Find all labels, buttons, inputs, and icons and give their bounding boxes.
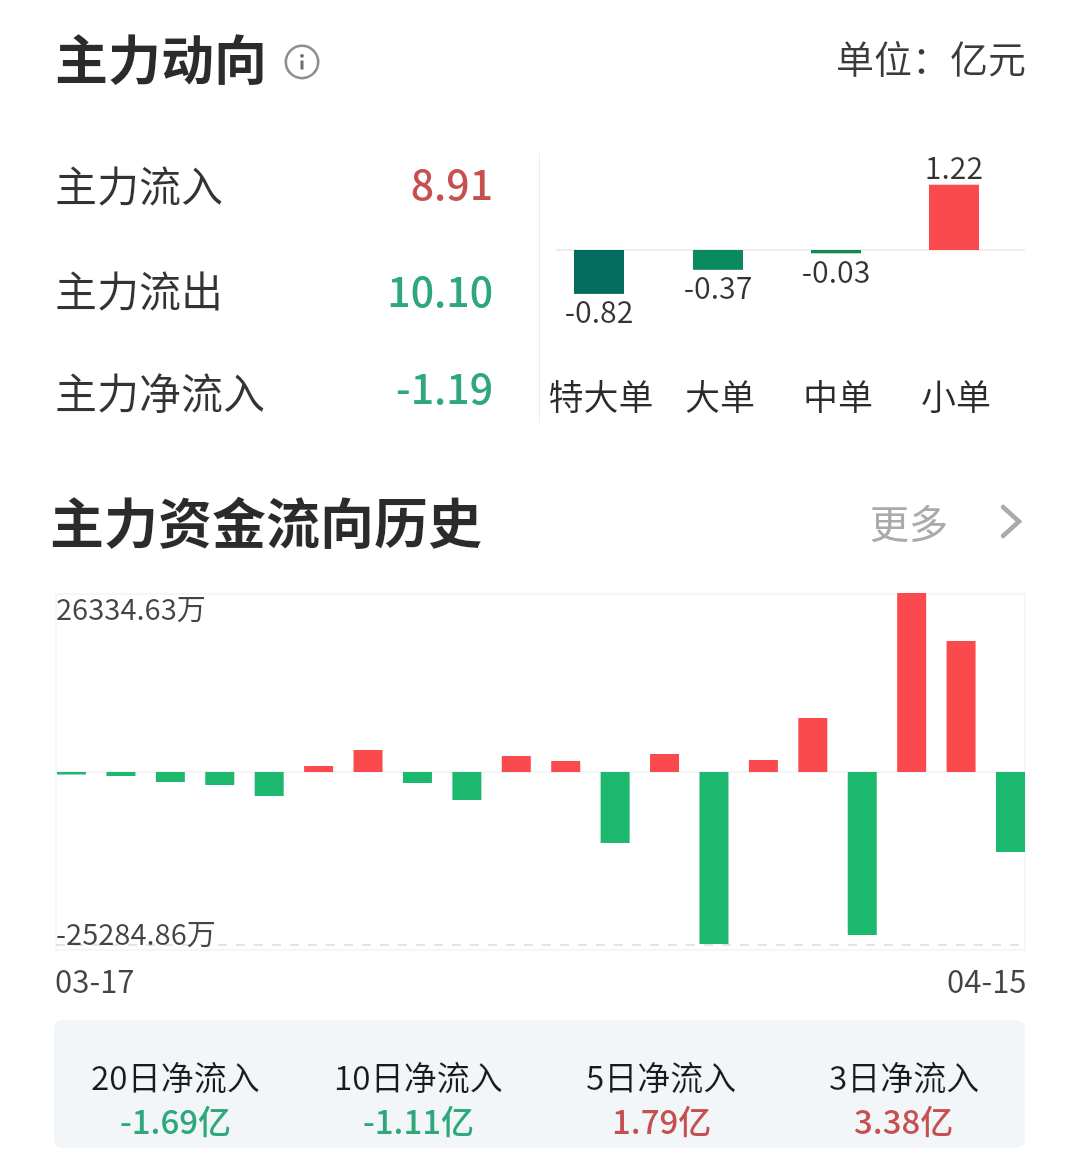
staticText: 5日净流入 [586,1052,737,1100]
staticText: 8.91 [55,152,493,211]
staticText: 主力动向 [55,19,267,96]
staticText: 主力资金流向历史 [50,481,482,559]
other: 说明 [281,41,323,83]
staticText: 26334.63万 [56,586,206,628]
staticText: 主力净流入 [55,360,266,421]
staticText: 更多 [870,493,949,549]
button[interactable]: 主力流出 [55,256,495,320]
staticText: 20日净流入 [91,1052,260,1100]
staticText: -0.37 [658,264,778,307]
staticText: 3.38亿 [854,1096,954,1144]
staticText: 1.79亿 [612,1096,712,1144]
staticText: -1.69亿 [120,1096,232,1144]
staticText: -0.82 [539,288,659,331]
button[interactable]: 3日净流入 [783,1020,1025,1148]
button[interactable]: 主力流入 [55,151,495,215]
staticText: 主力流入 [55,153,224,214]
button[interactable]: 主力净流入 [55,358,495,422]
button[interactable]: 更多 [850,470,1040,542]
staticText: 04-15 [947,957,1027,1002]
staticText: 大单 [640,369,800,420]
staticText: 中单 [758,369,918,420]
button[interactable]: 主力动向 [55,19,323,96]
staticText: 10日净流入 [334,1052,503,1100]
staticText: -1.11亿 [363,1096,475,1144]
staticText: 1.22 [894,144,1014,187]
button[interactable]: 主力资金流向历史 [50,481,482,559]
staticText: -1.19 [55,356,493,415]
button[interactable]: 10日净流入 [297,1020,540,1148]
staticText: 3日净流入 [829,1052,980,1100]
button[interactable]: 5日净流入 [540,1020,783,1148]
button[interactable]: 20日净流入 [54,1020,297,1148]
staticText: 小单 [876,369,1036,420]
staticText: -25284.86万 [56,911,216,953]
staticText: 03-17 [55,957,135,1002]
staticText: -0.03 [776,248,896,291]
staticText: 主力流出 [55,258,224,319]
staticText: 单位：亿元 [836,29,1027,84]
staticText: 特大单 [521,369,681,420]
staticText: 10.10 [55,259,493,318]
